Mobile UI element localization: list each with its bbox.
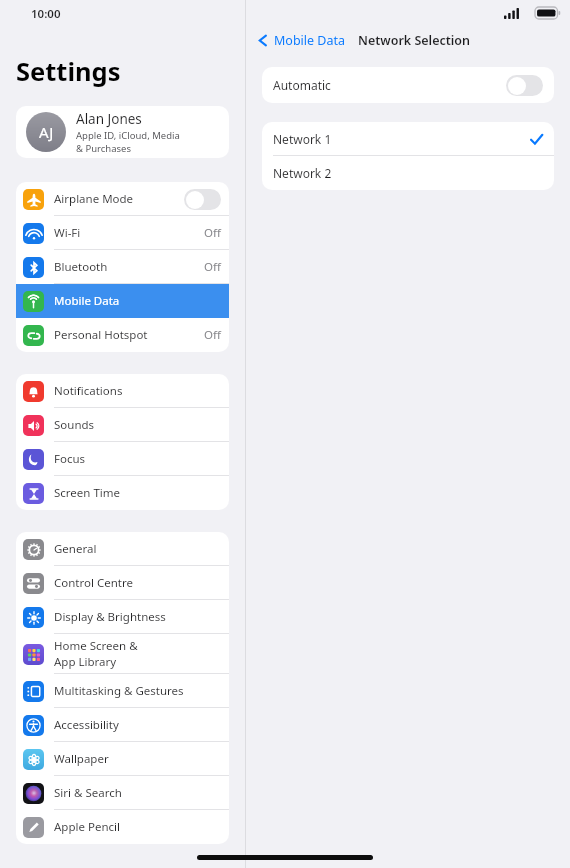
button[interactable]: Automatic xyxy=(262,67,554,103)
button[interactable]: Network 2 xyxy=(262,156,554,190)
staticText: Focus xyxy=(54,451,86,467)
staticText: Network Selection xyxy=(358,32,471,49)
staticText: & Purchases xyxy=(76,142,131,155)
button[interactable] xyxy=(506,75,543,96)
staticText: Bluetooth xyxy=(54,259,108,275)
staticText: Display & Brightness xyxy=(54,609,166,625)
staticText: Network 2 xyxy=(273,165,332,181)
staticText: Off xyxy=(204,327,221,343)
staticText: Home Screen & xyxy=(54,638,138,654)
staticText: AJ xyxy=(39,122,54,142)
staticText: Wi-Fi xyxy=(54,225,81,241)
staticText: Off xyxy=(204,259,221,275)
button[interactable]: Sounds xyxy=(16,408,229,442)
button[interactable]: Accessibility xyxy=(16,708,229,742)
button[interactable]: Notifications xyxy=(16,374,229,408)
staticText: Network 1 xyxy=(273,131,332,147)
button[interactable]: AJ xyxy=(16,106,229,158)
staticText: Apple ID, iCloud, Media xyxy=(76,129,180,142)
button[interactable]: Focus xyxy=(16,442,229,476)
staticText: Airplane Mode xyxy=(54,191,134,207)
staticText: App Library xyxy=(54,654,117,670)
staticText: Sounds xyxy=(54,417,95,433)
button[interactable]: Network 1 xyxy=(262,122,554,156)
button[interactable] xyxy=(184,189,221,210)
button[interactable]: Wi-Fi xyxy=(16,216,229,250)
button[interactable]: Mobile Data xyxy=(246,28,350,53)
staticText: Automatic xyxy=(273,77,331,93)
staticText: Mobile Data xyxy=(54,293,120,309)
button[interactable]: Apple Pencil xyxy=(16,810,229,844)
button[interactable]: Home Screen & xyxy=(16,634,229,674)
staticText: Accessibility xyxy=(54,717,119,733)
staticText: Multitasking & Gestures xyxy=(54,683,184,699)
button[interactable]: Personal Hotspot xyxy=(16,318,229,352)
staticText: Screen Time xyxy=(54,485,121,501)
button[interactable]: Bluetooth xyxy=(16,250,229,284)
button[interactable]: Mobile Data xyxy=(16,284,229,318)
staticText: Siri & Search xyxy=(54,785,122,801)
staticText: Control Centre xyxy=(54,575,133,591)
button[interactable]: Siri & Search xyxy=(16,776,229,810)
button[interactable]: General xyxy=(16,532,229,566)
staticText: Wallpaper xyxy=(54,751,109,767)
staticText: General xyxy=(54,541,97,557)
staticText: Settings xyxy=(16,54,121,89)
button[interactable]: Display & Brightness xyxy=(16,600,229,634)
button[interactable]: Screen Time xyxy=(16,476,229,510)
staticText: Notifications xyxy=(54,383,123,399)
button[interactable]: Multitasking & Gestures xyxy=(16,674,229,708)
staticText: Alan Jones xyxy=(76,110,142,128)
button[interactable]: Control Centre xyxy=(16,566,229,600)
button[interactable]: Wallpaper xyxy=(16,742,229,776)
staticText: Apple Pencil xyxy=(54,819,120,835)
staticText: Personal Hotspot xyxy=(54,327,148,343)
button[interactable]: Airplane Mode xyxy=(16,182,229,216)
staticText: Off xyxy=(204,225,221,241)
staticText: Mobile Data xyxy=(274,32,346,49)
staticText: 10:00 xyxy=(31,6,61,22)
